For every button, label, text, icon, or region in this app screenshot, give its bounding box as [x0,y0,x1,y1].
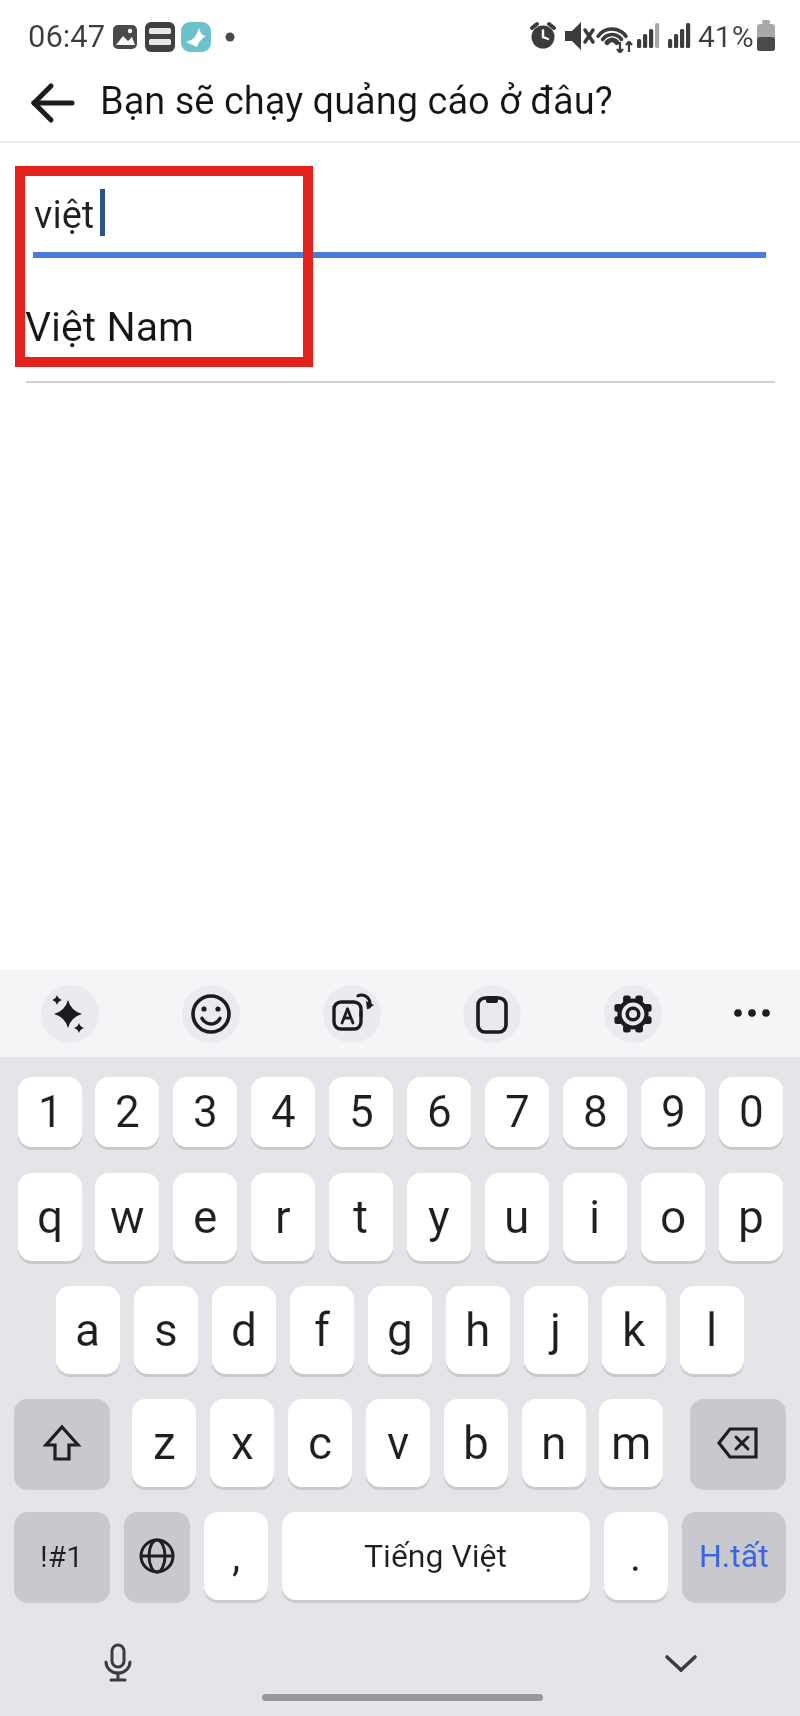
button[interactable]: q [18,1173,82,1261]
button[interactable]: l [680,1286,744,1374]
button[interactable]: f [290,1286,354,1374]
staticText: 41% [698,19,754,54]
staticText: H.tất [699,1537,769,1575]
button[interactable]: r [251,1173,315,1261]
staticText: e [193,1190,218,1244]
button[interactable]: 2 [95,1077,159,1147]
button[interactable]: c [288,1399,352,1487]
staticText: . [630,1532,642,1581]
staticText: 1 [38,1086,63,1138]
button[interactable]: 7 [485,1077,549,1147]
staticText: m [611,1416,652,1470]
button[interactable]: 9 [641,1077,705,1147]
button[interactable]: y [407,1173,471,1261]
staticText: c [308,1416,333,1470]
staticText: 7 [505,1086,530,1138]
staticText: p [738,1190,764,1244]
button[interactable]: g [368,1286,432,1374]
button[interactable]: o [641,1173,705,1261]
staticText: v [387,1416,410,1470]
button[interactable]: e [173,1173,237,1261]
staticText: g [387,1303,413,1357]
staticText: , [232,1532,241,1581]
button[interactable] [41,985,99,1043]
button[interactable]: n [522,1399,586,1487]
staticText: b [463,1416,489,1470]
staticText: 8 [583,1086,608,1138]
staticText: j [550,1303,562,1357]
button[interactable] [20,79,84,127]
staticText: l [706,1303,718,1357]
staticText: Bạn sẽ chạy quảng cáo ở đâu? [100,79,613,124]
staticText: 4 [271,1086,296,1138]
button[interactable]: a [56,1286,120,1374]
button[interactable]: 3 [173,1077,237,1147]
button[interactable]: t [329,1173,393,1261]
staticText: k [622,1303,646,1357]
staticText: 2 [115,1086,140,1138]
button[interactable]: d [212,1286,276,1374]
button[interactable]: 4 [251,1077,315,1147]
staticText: Tiếng Việt [364,1537,508,1575]
staticText: d [231,1303,257,1357]
button[interactable]: p [719,1173,783,1261]
button[interactable]: 6 [407,1077,471,1147]
button[interactable] [690,1399,786,1487]
staticText: a [75,1303,101,1357]
staticText: 6 [427,1086,452,1138]
staticText: f [314,1303,330,1357]
button[interactable] [92,1635,144,1691]
button[interactable]: w [95,1173,159,1261]
button[interactable]: Việt Nam [0,290,800,381]
button[interactable]: 0 [719,1077,783,1147]
staticText: !#1 [40,1539,84,1574]
staticText: r [275,1190,291,1244]
button[interactable]: b [444,1399,508,1487]
staticText: s [154,1303,178,1357]
button[interactable] [723,984,781,1042]
staticText: t [353,1190,369,1244]
staticText: x [231,1416,254,1470]
button[interactable]: . [604,1512,668,1600]
staticText: việt [34,193,95,238]
staticText: 5 [349,1086,374,1138]
staticText: h [465,1303,491,1357]
button[interactable]: 5 [329,1077,393,1147]
button[interactable]: H.tất [682,1512,786,1600]
button[interactable] [323,985,381,1043]
button[interactable] [463,985,521,1043]
staticText: 0 [739,1086,764,1138]
button[interactable]: j [524,1286,588,1374]
button[interactable]: i [563,1173,627,1261]
button[interactable]: , [204,1512,268,1600]
button[interactable]: !#1 [14,1512,110,1600]
staticText: Việt Nam [25,303,194,351]
staticText: w [110,1190,145,1244]
button[interactable]: k [602,1286,666,1374]
staticText: y [428,1190,450,1244]
button[interactable] [124,1512,190,1600]
staticText: 3 [193,1086,218,1138]
button[interactable]: 8 [563,1077,627,1147]
button[interactable] [655,1635,707,1691]
staticText: n [541,1416,567,1470]
staticText: q [37,1190,64,1244]
staticText: i [589,1190,601,1244]
staticText: z [153,1416,176,1470]
button[interactable]: 1 [18,1077,82,1147]
button[interactable]: Tiếng Việt [282,1512,590,1600]
button[interactable] [182,985,240,1043]
button[interactable]: s [134,1286,198,1374]
staticText: 9 [661,1086,686,1138]
staticText: o [660,1190,687,1244]
button[interactable]: h [446,1286,510,1374]
staticText: u [504,1190,530,1244]
staticText: 06:47 [28,18,106,54]
button[interactable] [604,985,662,1043]
button[interactable] [14,1399,110,1487]
button[interactable]: z [132,1399,196,1487]
button[interactable]: v [366,1399,430,1487]
button[interactable]: u [485,1173,549,1261]
button[interactable]: x [210,1399,274,1487]
button[interactable]: m [599,1399,663,1487]
